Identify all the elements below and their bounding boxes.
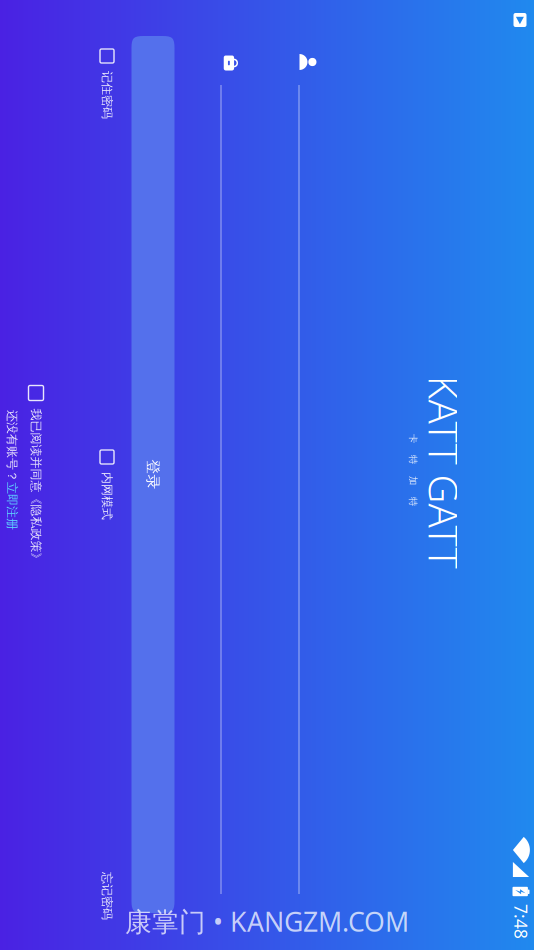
staticText: 卡 特 加 特 bbox=[226, 323, 298, 335]
button[interactable]: 还没有账号？ bbox=[202, 723, 322, 737]
button[interactable]: 登录 bbox=[0, 567, 534, 610]
staticText: 我已阅读并同意《隐私政策》 bbox=[200, 699, 356, 713]
staticText: 内网模式 bbox=[264, 628, 312, 642]
button[interactable]: 我已阅读并同意《隐私政策》 bbox=[177, 698, 356, 713]
staticText: 康掌门 • KANGZM.COM bbox=[125, 904, 409, 939]
staticText: 还没有账号？ bbox=[202, 723, 274, 737]
staticText: KATT GATT bbox=[167, 271, 360, 324]
staticText: 立即注册 bbox=[274, 723, 322, 737]
button[interactable]: 内网模式 bbox=[242, 628, 312, 642]
